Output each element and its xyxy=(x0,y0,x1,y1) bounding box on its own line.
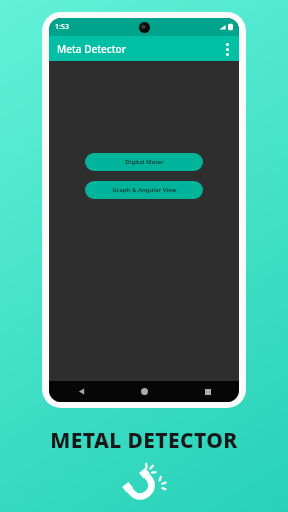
staticText: METAL DETECTOR xyxy=(50,426,238,455)
button[interactable]: More options xyxy=(215,37,239,61)
button[interactable]: Digital Meter xyxy=(85,153,203,171)
staticText: Digital Meter xyxy=(125,158,164,166)
staticText: Meta Detector xyxy=(57,42,126,56)
button[interactable]: Graph & Angular View xyxy=(85,181,203,199)
staticText: 1:53 xyxy=(55,22,69,32)
button[interactable]: Back xyxy=(49,381,113,402)
button[interactable]: Home xyxy=(113,381,176,402)
staticText: Graph & Angular View xyxy=(112,186,177,194)
button[interactable]: Recent apps xyxy=(176,381,239,402)
